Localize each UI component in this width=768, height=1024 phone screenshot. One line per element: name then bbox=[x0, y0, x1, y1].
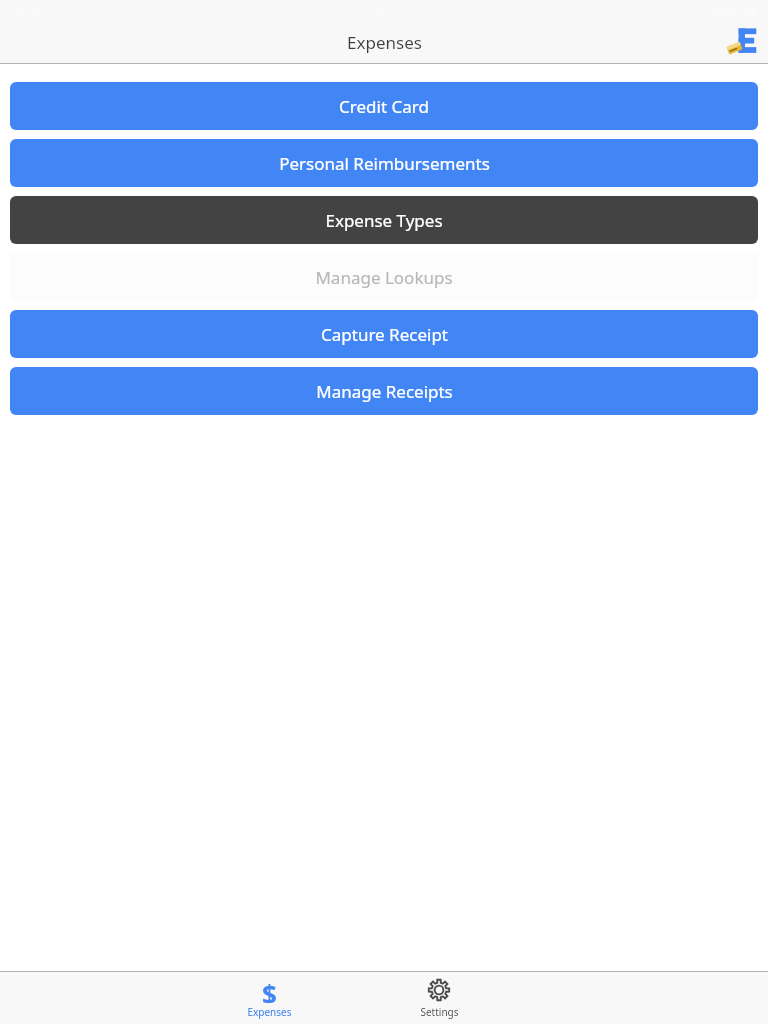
staticText: Credit Card bbox=[339, 95, 429, 118]
button[interactable]: Manage Lookups bbox=[10, 253, 758, 301]
staticText: Expense Types bbox=[325, 209, 443, 232]
staticText: Capture Receipt bbox=[321, 323, 448, 346]
button[interactable]: Settings bbox=[404, 977, 474, 1019]
button[interactable]: Manage Receipts bbox=[10, 367, 758, 415]
button[interactable]: Expense app logo bbox=[722, 22, 762, 62]
button[interactable]: Expense Types bbox=[10, 196, 758, 244]
button[interactable]: $ bbox=[234, 977, 304, 1019]
button[interactable]: Capture Receipt bbox=[10, 310, 758, 358]
staticText: $ bbox=[262, 977, 277, 1003]
staticText: Expenses bbox=[347, 31, 422, 54]
button[interactable]: Credit Card bbox=[10, 82, 758, 130]
staticText: Manage Lookups bbox=[315, 266, 453, 289]
button[interactable]: Personal Reimbursements bbox=[10, 139, 758, 187]
staticText: Settings bbox=[420, 1005, 459, 1019]
staticText: Personal Reimbursements bbox=[279, 152, 490, 175]
staticText: Manage Receipts bbox=[316, 380, 453, 403]
staticText: Expenses bbox=[247, 1005, 292, 1019]
